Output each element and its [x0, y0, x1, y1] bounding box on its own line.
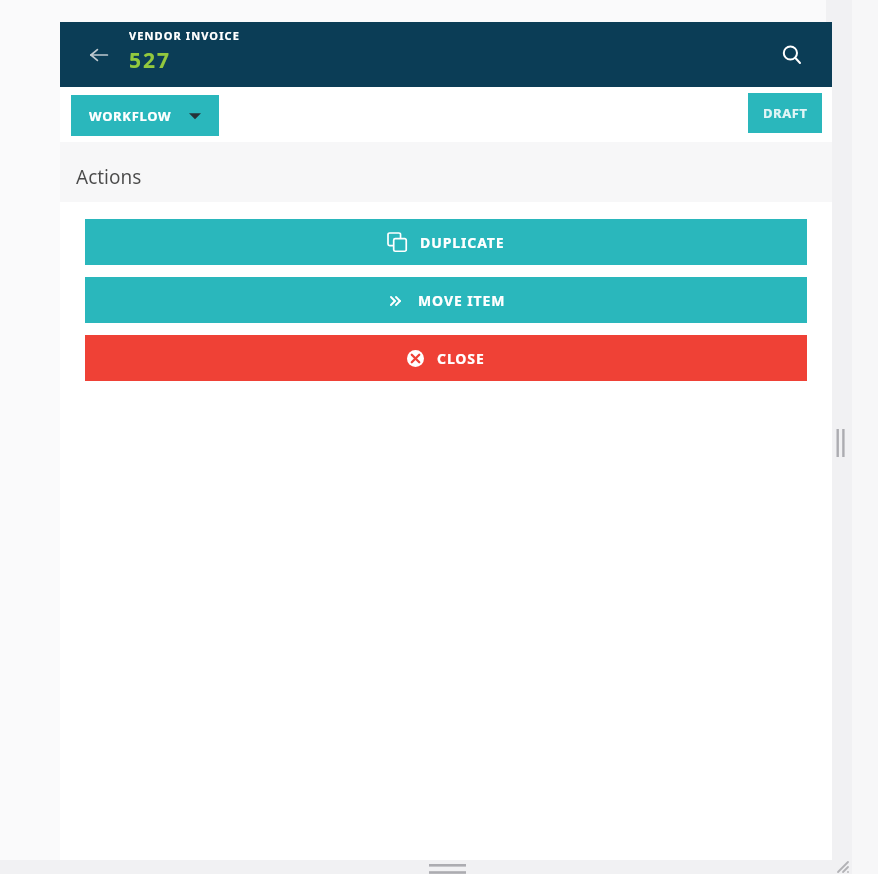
staticText: DRAFT	[763, 104, 808, 122]
staticText: VENDOR INVOICE	[129, 28, 240, 43]
staticText: CLOSE	[437, 349, 485, 368]
staticText: WORKFLOW	[89, 107, 172, 125]
staticText: DUPLICATE	[420, 233, 505, 252]
staticText: 527	[129, 46, 172, 75]
button[interactable]: Back	[80, 36, 118, 74]
button[interactable]: CLOSE	[85, 335, 807, 381]
button[interactable]: MOVE ITEM	[85, 277, 807, 323]
button[interactable]: DRAFT	[748, 93, 822, 133]
button[interactable]: Search	[770, 33, 814, 77]
staticText: Actions	[76, 164, 142, 190]
staticText: MOVE ITEM	[418, 291, 506, 310]
button[interactable]: WORKFLOW	[71, 95, 219, 136]
button[interactable]: DUPLICATE	[85, 219, 807, 265]
